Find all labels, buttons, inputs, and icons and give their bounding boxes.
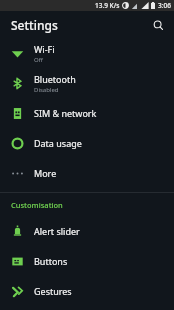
staticText: Alert slider	[34, 225, 80, 237]
button[interactable]: Data usage	[0, 128, 174, 158]
staticText: Buttons	[34, 255, 68, 267]
button[interactable]: More	[0, 158, 174, 188]
staticText: 13.9 K/s	[95, 1, 120, 10]
button[interactable]: Alert slider	[0, 216, 174, 246]
staticText: Customisation	[11, 200, 63, 210]
staticText: More	[34, 167, 57, 179]
button[interactable]: Buttons	[0, 246, 174, 276]
button[interactable]: SIM & network	[0, 98, 174, 128]
staticText: SIM & network	[34, 107, 97, 119]
button[interactable]: Search	[148, 15, 168, 35]
staticText: Wi-Fi	[34, 43, 55, 55]
staticText: 3:06	[158, 1, 171, 10]
staticText: Gestures	[34, 285, 72, 297]
staticText: Off	[34, 56, 43, 64]
button[interactable]: Bluetooth	[0, 68, 174, 98]
button[interactable]: Wi-Fi	[0, 38, 174, 68]
button[interactable]: Gestures	[0, 276, 174, 306]
staticText: Settings	[11, 17, 58, 33]
staticText: Bluetooth	[34, 73, 76, 85]
staticText: Disabled	[34, 86, 59, 94]
staticText: Data usage	[34, 137, 82, 149]
